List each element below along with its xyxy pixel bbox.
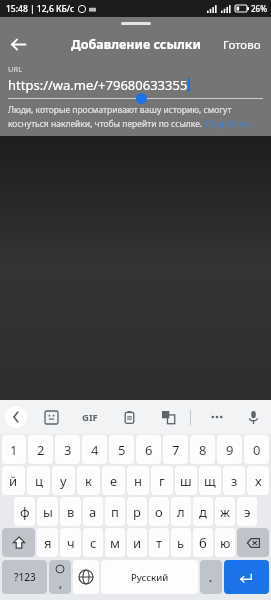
staticText: в bbox=[67, 503, 75, 521]
staticText: а bbox=[89, 503, 97, 521]
button[interactable]: я bbox=[37, 528, 58, 557]
staticText: щ bbox=[204, 472, 216, 490]
staticText: г bbox=[159, 472, 165, 490]
button[interactable]: й bbox=[2, 466, 25, 495]
button[interactable]: Change language bbox=[73, 560, 99, 594]
button[interactable]: р bbox=[127, 497, 147, 526]
staticText: м bbox=[110, 534, 120, 552]
staticText: я bbox=[44, 534, 52, 552]
button[interactable]: Back bbox=[0, 30, 36, 59]
button[interactable]: 0 bbox=[244, 435, 269, 464]
button[interactable]: ы bbox=[37, 497, 58, 526]
button[interactable]: ц bbox=[27, 466, 50, 495]
staticText: ф bbox=[20, 503, 30, 521]
button[interactable]: Translate bbox=[158, 407, 178, 427]
staticText: е bbox=[110, 472, 118, 490]
button[interactable]: ш bbox=[175, 466, 197, 495]
button[interactable]: Русский bbox=[101, 560, 198, 594]
staticText: 7 bbox=[172, 441, 180, 459]
button[interactable]: е bbox=[102, 466, 125, 495]
button[interactable]: 1 bbox=[2, 435, 26, 464]
staticText: , bbox=[59, 577, 62, 591]
staticText: б bbox=[199, 534, 207, 552]
button[interactable]: ю bbox=[215, 528, 235, 557]
button[interactable]: 5 bbox=[109, 435, 134, 464]
button[interactable]: ф bbox=[14, 497, 35, 526]
staticText: Добавление ссылки bbox=[71, 36, 201, 53]
button[interactable]: 7 bbox=[163, 435, 188, 464]
button[interactable]: в bbox=[60, 497, 81, 526]
button[interactable]: э bbox=[237, 497, 257, 526]
staticText: Русский bbox=[131, 571, 169, 584]
button[interactable]: и bbox=[127, 528, 147, 557]
button[interactable]: Collapse bbox=[5, 406, 27, 428]
button[interactable]: щ bbox=[199, 466, 221, 495]
button[interactable]: л bbox=[171, 497, 191, 526]
staticText: ж bbox=[220, 503, 230, 521]
staticText: с bbox=[90, 534, 97, 552]
button[interactable]: GIF bbox=[80, 409, 100, 426]
button[interactable]: з bbox=[223, 466, 245, 495]
staticText: ч bbox=[67, 534, 75, 552]
button[interactable]: с bbox=[83, 528, 103, 557]
button[interactable]: . bbox=[200, 560, 222, 594]
button[interactable]: д bbox=[193, 497, 213, 526]
button[interactable]: ?123 bbox=[2, 560, 47, 594]
button[interactable]: 9 bbox=[217, 435, 242, 464]
button[interactable]: т bbox=[149, 528, 169, 557]
staticText: к bbox=[85, 472, 92, 490]
button[interactable]: Stickers bbox=[41, 407, 61, 427]
staticText: л bbox=[177, 503, 185, 521]
staticText: ш bbox=[180, 472, 192, 490]
staticText: ы bbox=[43, 503, 53, 521]
button[interactable]: 2 bbox=[28, 435, 53, 464]
staticText: х bbox=[255, 472, 262, 490]
button[interactable]: Emoji bbox=[49, 560, 71, 594]
button[interactable]: Готово bbox=[213, 31, 271, 59]
button[interactable]: ь bbox=[171, 528, 191, 557]
staticText: GIF bbox=[82, 411, 98, 424]
button[interactable]: 8 bbox=[190, 435, 215, 464]
staticText: ю bbox=[220, 534, 231, 552]
staticText: Люди, которые просматривают вашу историю… bbox=[8, 104, 232, 116]
button[interactable]: г bbox=[151, 466, 173, 495]
button[interactable]: м bbox=[105, 528, 125, 557]
button[interactable]: а bbox=[83, 497, 103, 526]
staticText: р bbox=[133, 503, 141, 521]
staticText: коснуться наклейки, чтобы перейти по ссы… bbox=[8, 118, 205, 130]
button[interactable]: ж bbox=[215, 497, 235, 526]
button[interactable]: у bbox=[52, 466, 75, 495]
button[interactable]: 3 bbox=[55, 435, 80, 464]
staticText: https://wa.me/+79680633355 bbox=[8, 76, 188, 94]
button[interactable]: Voice input bbox=[243, 407, 263, 427]
staticText: 3 bbox=[64, 441, 72, 459]
staticText: д bbox=[199, 503, 207, 521]
button[interactable]: к bbox=[77, 466, 100, 495]
button[interactable]: Shift bbox=[2, 528, 35, 557]
button[interactable]: б bbox=[193, 528, 213, 557]
staticText: з bbox=[231, 472, 238, 490]
button[interactable]: Backspace bbox=[237, 528, 269, 557]
staticText: . bbox=[209, 570, 213, 585]
button[interactable]: 4 bbox=[82, 435, 107, 464]
staticText: ?123 bbox=[14, 570, 36, 584]
button[interactable]: 6 bbox=[136, 435, 161, 464]
button[interactable]: Enter bbox=[224, 560, 269, 594]
button[interactable]: Clipboard bbox=[119, 407, 139, 427]
staticText: 9 bbox=[226, 441, 234, 459]
button[interactable]: ч bbox=[60, 528, 81, 557]
staticText: URL bbox=[8, 64, 23, 74]
staticText: 26% bbox=[251, 3, 267, 14]
staticText: 4 bbox=[91, 441, 99, 459]
staticText: 0 bbox=[253, 441, 261, 459]
button[interactable]: х bbox=[247, 466, 269, 495]
staticText: й bbox=[9, 472, 18, 490]
button[interactable]: о bbox=[149, 497, 169, 526]
button[interactable]: More bbox=[207, 407, 227, 427]
button[interactable]: н bbox=[127, 466, 149, 495]
staticText: у bbox=[60, 472, 67, 490]
staticText: 6 bbox=[145, 441, 153, 459]
staticText: 2 bbox=[37, 441, 45, 459]
button[interactable]: Подробнее bbox=[205, 118, 252, 130]
button[interactable]: п bbox=[105, 497, 125, 526]
